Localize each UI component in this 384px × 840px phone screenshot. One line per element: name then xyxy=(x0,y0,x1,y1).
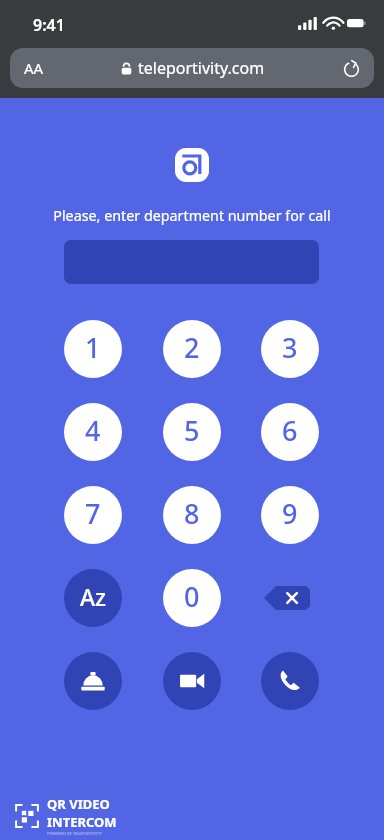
button[interactable]: 6 xyxy=(261,403,319,461)
button[interactable]: 0 xyxy=(163,569,221,627)
staticText: POWERED BY TELEPORTIVITY xyxy=(47,831,102,836)
staticText: 0 xyxy=(184,578,200,615)
staticText: INTERCOM xyxy=(47,813,117,831)
staticText: 8 xyxy=(184,495,200,532)
staticText: 6 xyxy=(282,412,298,449)
staticText: Az xyxy=(80,581,107,612)
staticText: teleportivity.com xyxy=(138,57,265,79)
staticText: 9 xyxy=(282,495,298,532)
button[interactable]: 5 xyxy=(163,403,221,461)
button[interactable]: AA xyxy=(10,48,374,88)
staticText: 9:41 xyxy=(33,14,65,36)
button[interactable]: 7 xyxy=(64,486,122,544)
staticText: AA xyxy=(24,58,44,78)
staticText: 7 xyxy=(85,495,101,532)
staticText: Please, enter department number for call xyxy=(0,206,384,225)
staticText: 3 xyxy=(282,329,298,366)
staticText: 5 xyxy=(184,412,200,449)
staticText: 1 xyxy=(85,329,101,366)
button[interactable]: 3 xyxy=(261,320,319,378)
button[interactable]: 9 xyxy=(261,486,319,544)
button[interactable]: Voice call xyxy=(261,652,319,710)
staticText: 4 xyxy=(85,412,101,449)
button[interactable]: Backspace xyxy=(264,586,310,610)
button[interactable]: 2 xyxy=(163,320,221,378)
staticText: QR VIDEO xyxy=(47,795,110,813)
button[interactable]: Az xyxy=(64,569,122,627)
button[interactable]: 1 xyxy=(64,320,122,378)
button[interactable]: Call reception xyxy=(64,652,122,710)
button[interactable]: Video call xyxy=(163,652,221,710)
staticText: 2 xyxy=(184,329,200,366)
button[interactable]: 4 xyxy=(64,403,122,461)
button[interactable]: 8 xyxy=(163,486,221,544)
